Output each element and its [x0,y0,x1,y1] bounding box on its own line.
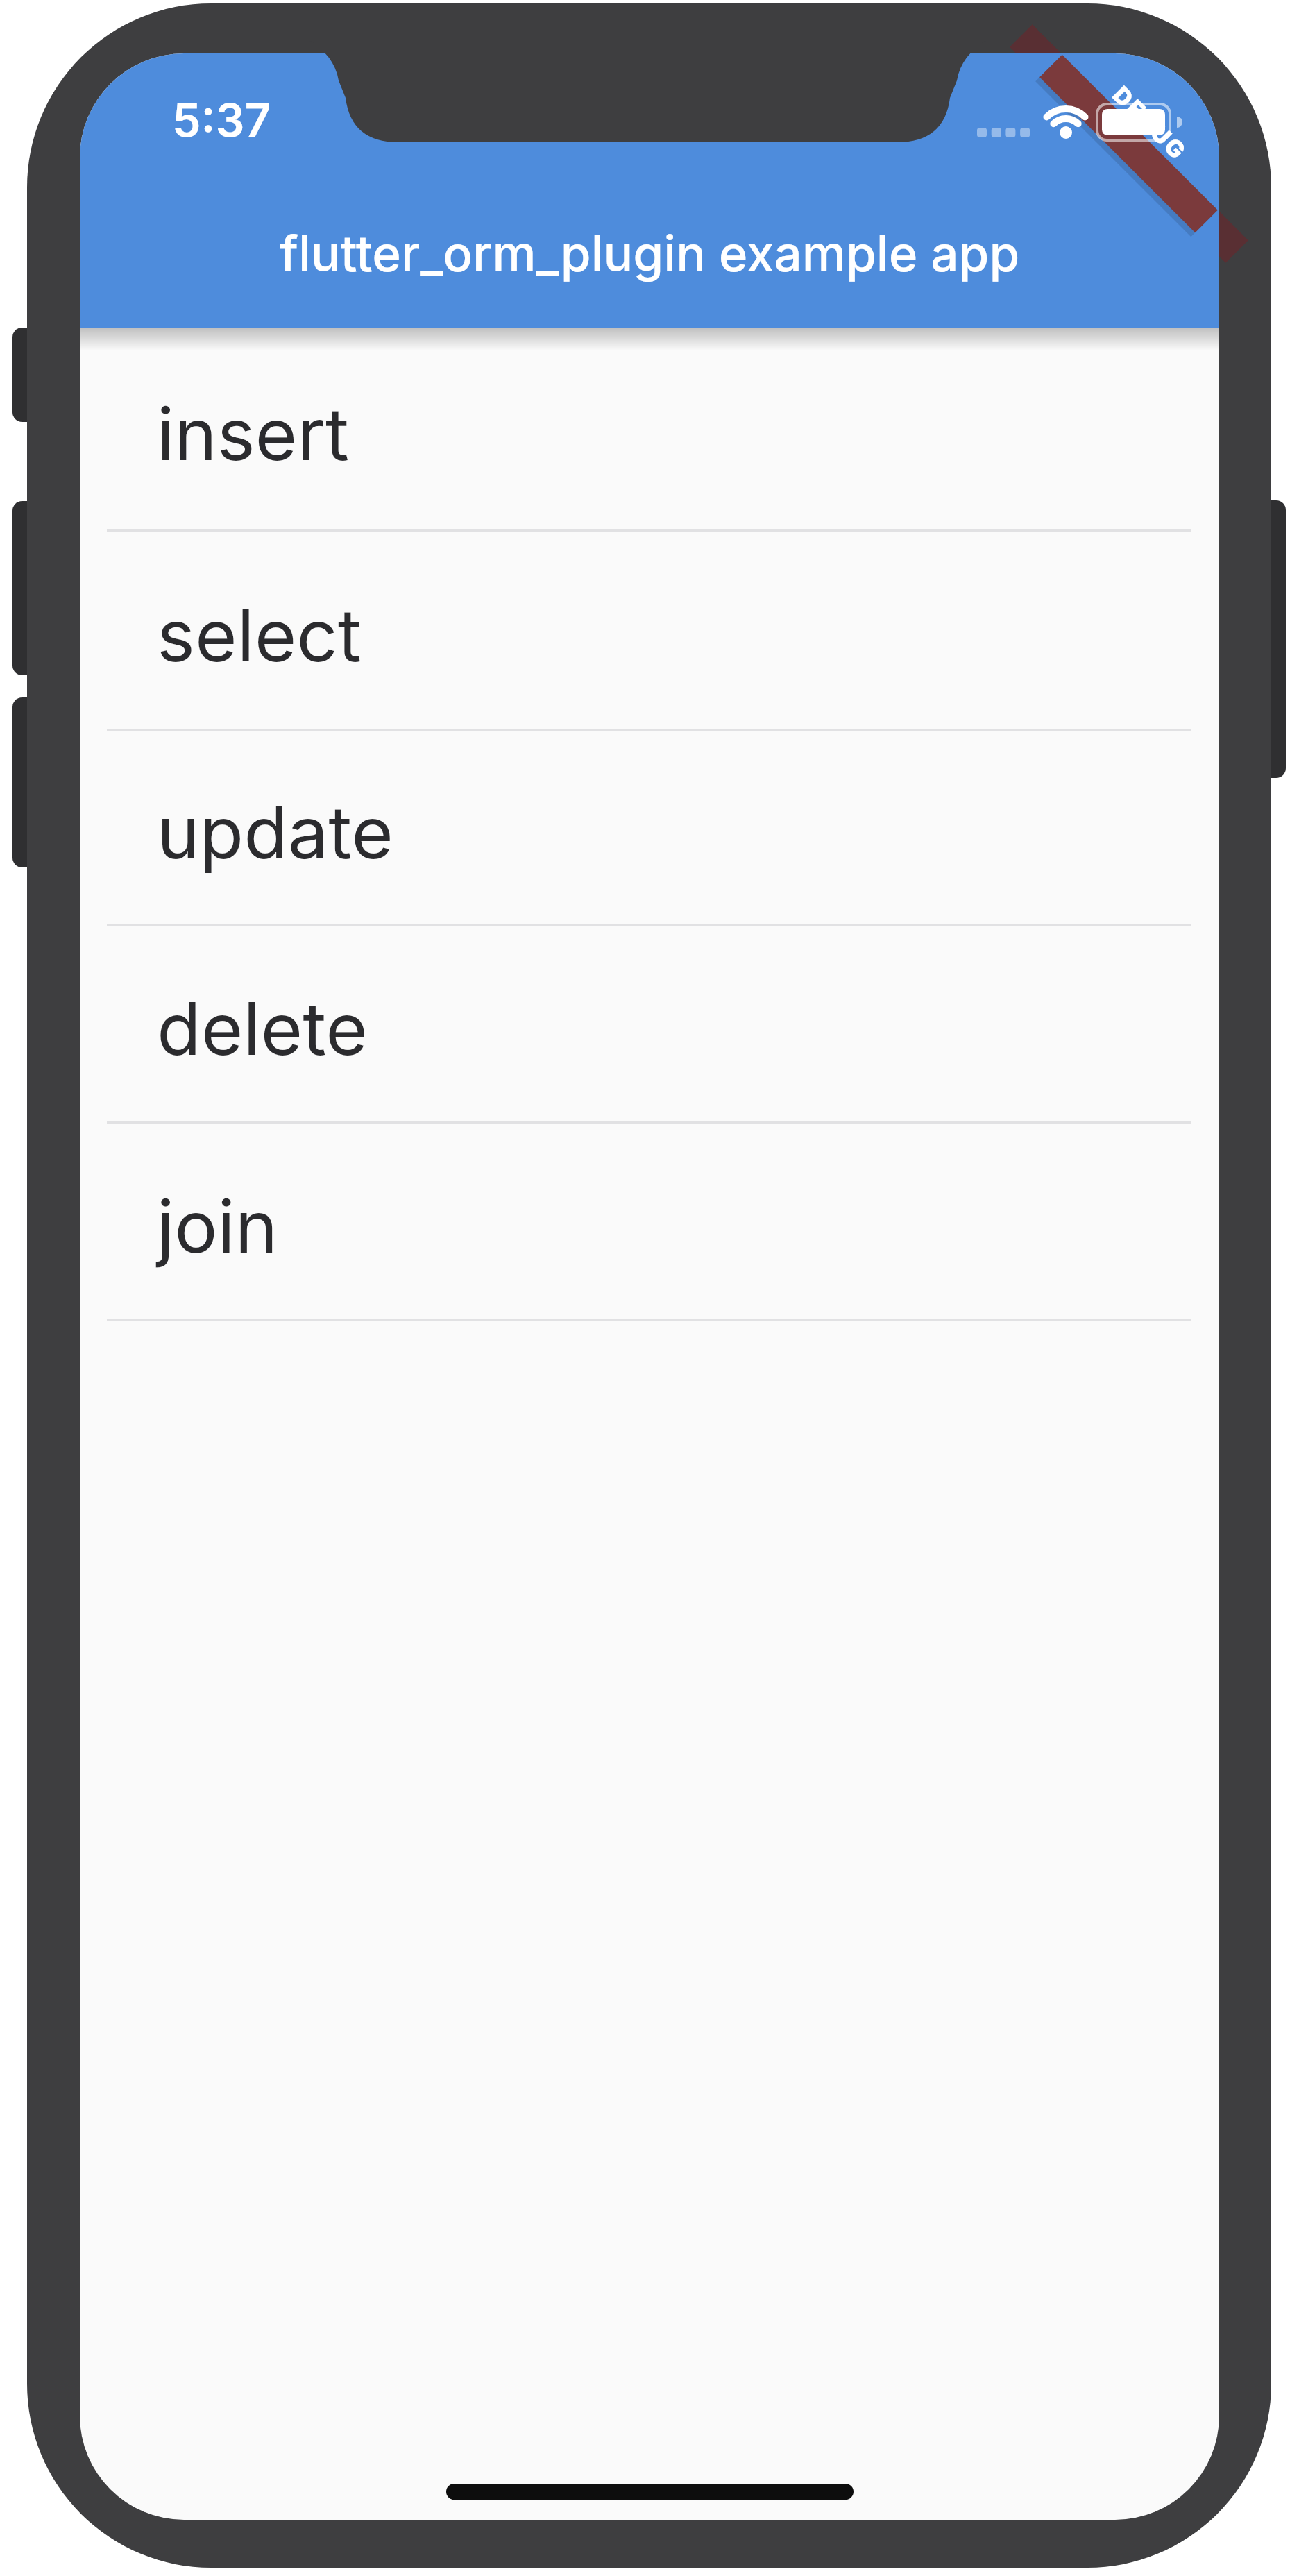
button[interactable]: select [80,531,1219,730]
button[interactable]: insert [80,328,1219,531]
staticText: select [157,591,362,679]
staticText: delete [157,985,368,1072]
button[interactable]: join [80,1123,1219,1321]
staticText: join [157,1183,278,1270]
staticText: flutter_orm_plugin example app [280,223,1020,283]
staticText: update [157,788,393,876]
button[interactable]: update [80,730,1219,926]
staticText: DEBUG [1107,80,1193,166]
staticText: insert [157,390,349,477]
button[interactable]: delete [80,926,1219,1123]
staticText: 5:37 [172,92,271,148]
